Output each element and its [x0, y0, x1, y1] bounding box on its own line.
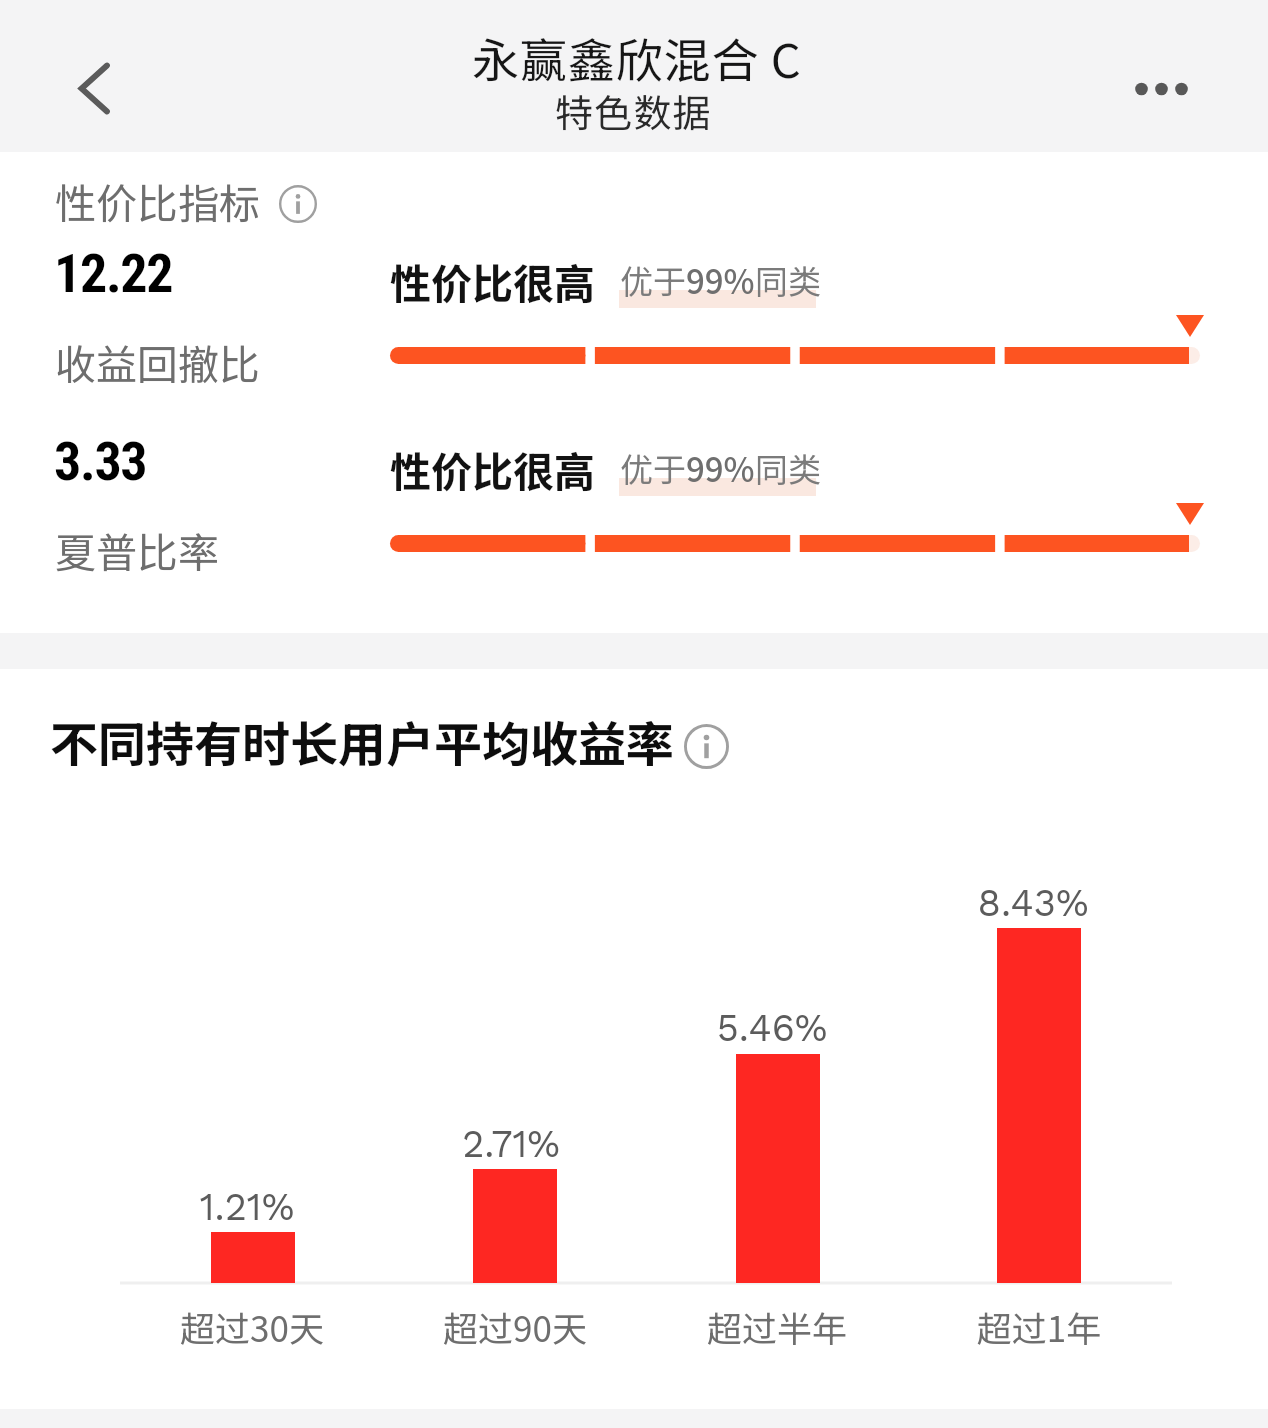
- staticText: 性价比很高: [390, 439, 595, 498]
- button[interactable]: More options: [1125, 68, 1197, 110]
- staticText: 99%: [686, 256, 755, 304]
- staticText: 3.33: [54, 430, 147, 493]
- staticText: 夏普比率: [55, 520, 219, 579]
- staticText: 2.71%: [361, 1122, 661, 1167]
- button[interactable]: Info about cost performance index: [279, 185, 317, 223]
- staticText: 超过1年: [889, 1301, 1189, 1352]
- staticText: 同类: [755, 256, 821, 304]
- staticText: 收益回撤比: [55, 332, 260, 391]
- button[interactable]: Back: [56, 44, 128, 134]
- staticText: 5.46%: [622, 1006, 922, 1051]
- staticText: 99%: [686, 444, 755, 492]
- staticText: 超过30天: [102, 1301, 402, 1352]
- staticText: 性价比指标: [55, 171, 260, 230]
- staticText: 优于: [620, 444, 686, 492]
- staticText: 性价比很高: [390, 251, 595, 310]
- staticText: 优于: [620, 256, 686, 304]
- staticText: 特色数据: [555, 83, 712, 138]
- button[interactable]: Info about average return by holding per…: [684, 724, 729, 769]
- staticText: 不同持有时长用户平均收益率: [50, 706, 675, 776]
- staticText: 12.22: [54, 242, 173, 305]
- staticText: 永赢鑫欣混合 C: [472, 23, 802, 91]
- staticText: 超过90天: [365, 1301, 665, 1352]
- staticText: 超过半年: [627, 1301, 927, 1352]
- staticText: 1.21%: [97, 1185, 397, 1230]
- staticText: 同类: [755, 444, 821, 492]
- staticText: 8.43%: [883, 881, 1183, 926]
